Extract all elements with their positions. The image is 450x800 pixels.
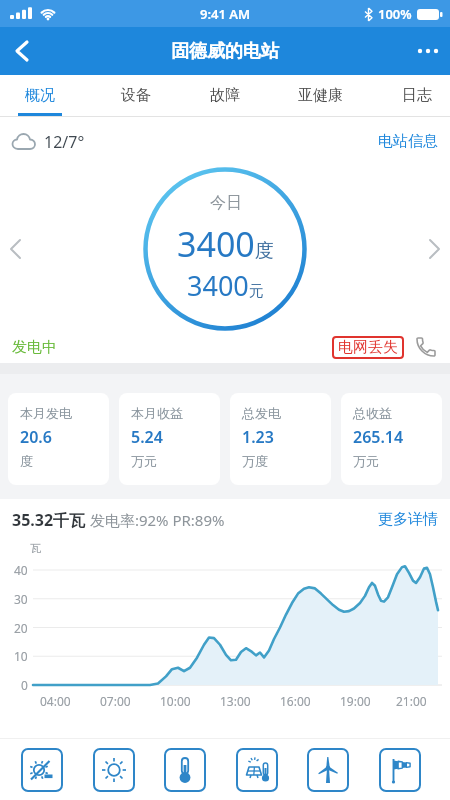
button[interactable]: 设备	[121, 75, 151, 116]
button[interactable]: 日志	[402, 75, 432, 116]
button[interactable]	[406, 27, 450, 75]
staticText: 概况	[25, 86, 55, 105]
staticText: 0	[21, 677, 28, 693]
button[interactable]	[21, 748, 63, 792]
staticText: 今日	[210, 193, 242, 213]
staticText: 10	[14, 648, 28, 664]
staticText: 10:00	[160, 693, 191, 709]
button[interactable]: 更多详情	[378, 510, 438, 529]
staticText: 40	[14, 562, 28, 578]
staticText: 13:00	[220, 693, 251, 709]
staticText: 总收益	[353, 405, 392, 421]
staticText: 更多详情	[378, 510, 438, 529]
staticText: 3400元	[187, 267, 264, 304]
staticText: 瓦	[30, 541, 41, 555]
button[interactable]	[93, 748, 135, 792]
staticText: 21:00	[396, 693, 427, 709]
button[interactable]: 总收益	[353, 405, 442, 485]
button[interactable]: 电站信息	[378, 132, 438, 151]
staticText: 万度	[242, 453, 268, 469]
staticText: 9:41 AM	[200, 5, 251, 23]
button[interactable]: 亚健康	[298, 75, 343, 116]
staticText: 故障	[210, 86, 240, 105]
staticText: 固德威的电站	[171, 40, 279, 63]
staticText: 20.6	[20, 426, 52, 448]
button[interactable]: 本月收益	[131, 405, 220, 485]
button[interactable]	[236, 748, 278, 792]
button[interactable]: 本月发电	[20, 405, 109, 485]
button[interactable]: 故障	[210, 75, 240, 116]
staticText: 度	[20, 453, 33, 469]
button[interactable]: 概况	[18, 75, 62, 116]
staticText: 亚健康	[298, 86, 343, 105]
button[interactable]	[379, 748, 421, 792]
staticText: 总发电	[242, 405, 281, 421]
staticText: 3400度	[177, 221, 274, 267]
button[interactable]	[307, 748, 349, 792]
staticText: 5.24	[131, 426, 163, 448]
staticText: 04:00	[40, 693, 71, 709]
staticText: 设备	[121, 86, 151, 105]
staticText: 12/7°	[44, 131, 85, 153]
button[interactable]	[0, 27, 44, 75]
staticText: 电站信息	[378, 132, 438, 151]
staticText: 万元	[353, 453, 379, 469]
staticText: 20	[14, 620, 28, 636]
button[interactable]	[414, 335, 438, 359]
staticText: 1.23	[242, 426, 274, 448]
staticText: 07:00	[100, 693, 131, 709]
staticText: 30	[14, 591, 28, 607]
button[interactable]: 电网丢失	[338, 338, 398, 357]
staticText: 万元	[131, 453, 157, 469]
staticText: 265.14	[353, 426, 404, 448]
staticText: 发电中	[12, 338, 57, 357]
staticText: 发电率:92% PR:89%	[86, 510, 225, 530]
staticText: 16:00	[280, 693, 311, 709]
staticText: 19:00	[340, 693, 371, 709]
staticText: 本月发电	[20, 405, 72, 421]
button[interactable]	[164, 748, 206, 792]
staticText: 电网丢失	[338, 338, 398, 357]
button[interactable]: 总发电	[242, 405, 331, 485]
staticText: 35.32千瓦	[12, 509, 86, 531]
staticText: 100%	[378, 5, 412, 23]
staticText: 本月收益	[131, 405, 183, 421]
staticText: 日志	[402, 86, 432, 105]
